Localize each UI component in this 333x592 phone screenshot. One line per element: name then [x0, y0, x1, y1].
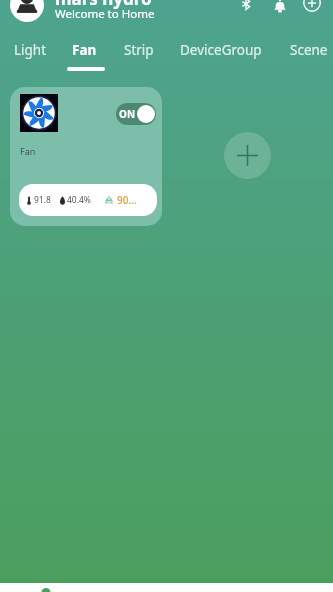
button[interactable]: Power toggle	[116, 103, 156, 125]
button[interactable]: Profile	[10, 0, 44, 22]
button[interactable]: Bluetooth	[234, 0, 258, 16]
staticText: Fan	[20, 145, 36, 157]
button[interactable]: Power toggle	[10, 87, 162, 226]
button[interactable]: Tab 0	[11, 583, 81, 592]
staticText: mars hydro	[55, 0, 152, 10]
button[interactable]: Strip	[118, 40, 148, 71]
staticText: DeviceGroup	[180, 41, 262, 59]
button[interactable]: Add device	[299, 0, 324, 15]
button[interactable]: Notifications	[268, 0, 292, 18]
staticText: Welcome to Home	[55, 6, 155, 22]
staticText: Fan	[72, 41, 97, 59]
staticText: 91.8	[34, 194, 51, 206]
staticText: ON	[119, 107, 136, 121]
staticText: 90...	[117, 193, 137, 207]
button[interactable]: Light	[8, 40, 41, 71]
staticText: Light	[14, 41, 47, 59]
button[interactable]: Add device	[224, 132, 271, 179]
staticText: Scene	[290, 41, 328, 59]
button[interactable]: Fan	[66, 40, 104, 71]
button[interactable]: DeviceGroup	[174, 40, 256, 71]
staticText: Strip	[124, 41, 154, 59]
staticText: 40.4%	[67, 194, 91, 206]
button[interactable]: Scene	[284, 40, 322, 71]
